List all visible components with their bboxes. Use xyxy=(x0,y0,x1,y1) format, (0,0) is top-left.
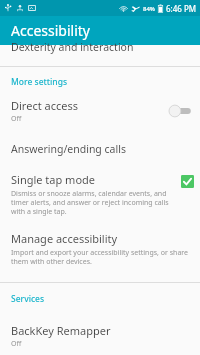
button[interactable]: Direct access toggle xyxy=(168,104,192,118)
staticText: Answering/ending calls xyxy=(11,142,126,156)
button[interactable]: Dexterity and interaction xyxy=(0,45,200,66)
button[interactable]: Manage accessibility xyxy=(0,227,200,270)
button[interactable]: Single tap mode xyxy=(0,169,200,219)
staticText: More settings xyxy=(11,76,200,88)
staticText: Direct access xyxy=(11,98,78,113)
staticText: Dismiss or snooze alarms, calendar event… xyxy=(11,189,169,216)
button[interactable]: Answering/ending calls xyxy=(0,137,200,161)
staticText: Accessibility xyxy=(11,21,90,40)
staticText: Off xyxy=(11,114,22,124)
staticText: Single tap mode xyxy=(11,172,96,187)
button[interactable]: Single tap mode checkbox xyxy=(181,175,194,188)
staticText: Off xyxy=(11,339,22,349)
staticText: Dexterity and interaction xyxy=(11,40,134,54)
button[interactable]: BackKey Remapper xyxy=(0,319,200,353)
button[interactable]: Direct access xyxy=(0,94,200,128)
staticText: 84% xyxy=(143,5,155,13)
staticText: Services xyxy=(11,293,200,305)
staticText: BackKey Remapper xyxy=(11,323,111,338)
staticText: Manage accessibility xyxy=(11,231,118,246)
staticText: Import and export your accessibility set… xyxy=(11,248,189,266)
staticText: 6:46 PM xyxy=(166,3,197,14)
